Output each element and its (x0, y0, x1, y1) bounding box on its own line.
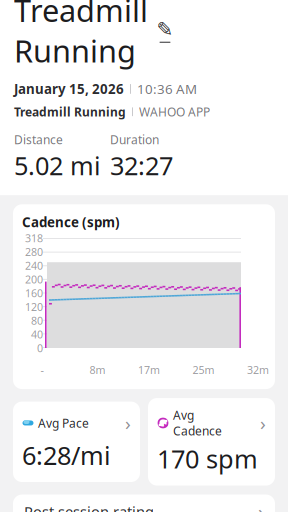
staticText: ✎ (156, 18, 173, 41)
staticText: Treadmill Running (14, 0, 148, 71)
staticText: WAHOO APP (139, 104, 210, 120)
staticText: Avg Cadence (173, 407, 222, 439)
staticText: 80 (31, 313, 43, 328)
staticText: ▸ (164, 420, 168, 429)
staticText: › (258, 498, 264, 512)
staticText: 170 spm (157, 442, 258, 475)
button[interactable]: Edit activity name (155, 19, 175, 41)
button[interactable]: ▸ (148, 398, 275, 486)
staticText: - (40, 363, 43, 377)
staticText: 5.02 mi (14, 149, 101, 182)
staticText: 280 (25, 245, 43, 259)
staticText: › (125, 411, 131, 435)
staticText: Avg Pace (38, 415, 89, 431)
staticText: 25m (192, 363, 214, 377)
staticText: 40 (31, 327, 43, 341)
staticText: 318 (25, 231, 43, 245)
staticText: 6:28/mi (22, 438, 111, 472)
staticText: Duration (110, 132, 159, 148)
staticText: 10:36 AM (137, 80, 197, 98)
staticText: 17m (138, 363, 160, 377)
staticText: 160 (25, 286, 43, 300)
staticText: 32:27 (110, 149, 173, 182)
button[interactable]: Post session rating (13, 495, 275, 512)
button[interactable]: Avg Pace (13, 402, 140, 482)
staticText: 120 (25, 300, 43, 314)
staticText: 8m (89, 363, 105, 377)
staticText: › (260, 411, 266, 435)
staticText: 240 (25, 258, 43, 273)
staticText: Treadmill Running (14, 104, 126, 120)
staticText: Post session rating (24, 502, 154, 512)
staticText: January 15, 2026 (14, 80, 124, 98)
staticText: 32m (247, 363, 269, 377)
staticText: 200 (25, 272, 43, 286)
staticText: 0 (37, 341, 43, 355)
staticText: Cadence (spm) (22, 213, 120, 231)
staticText: Distance (14, 132, 63, 148)
